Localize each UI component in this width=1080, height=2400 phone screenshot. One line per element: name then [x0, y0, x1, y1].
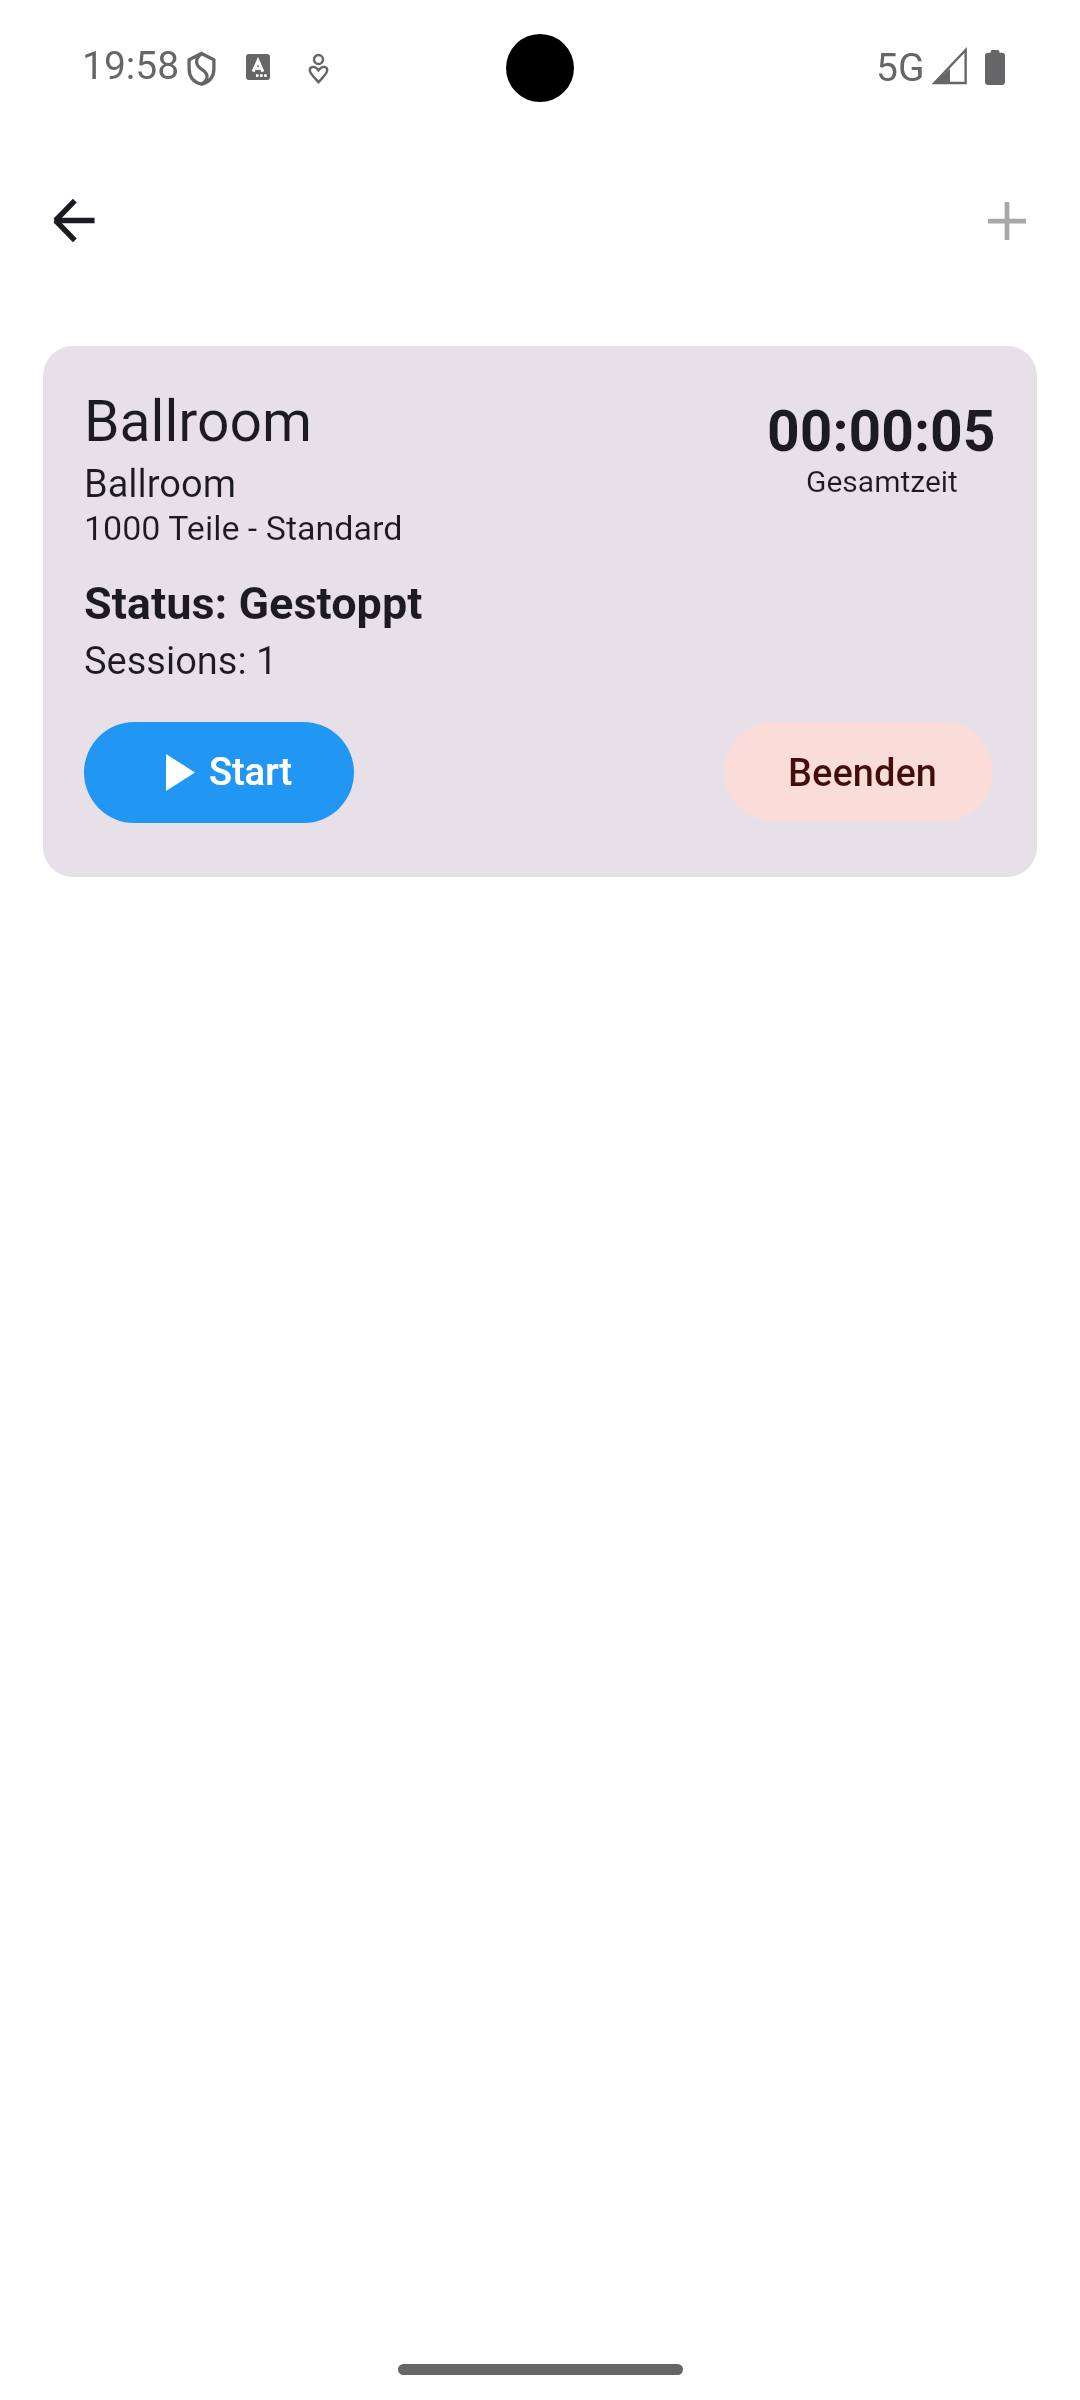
staticText: Start [209, 750, 293, 795]
button[interactable]: Ballroom [43, 346, 1037, 877]
button[interactable]: Add [959, 173, 1055, 269]
staticText: 1000 Teile - Standard [84, 508, 403, 548]
staticText: 5G [876, 45, 925, 91]
staticText: Status: Gestoppt [84, 577, 423, 630]
button[interactable]: Start [84, 722, 354, 823]
staticText: 19:58 [82, 43, 180, 89]
staticText: Ballroom [84, 462, 236, 507]
staticText: Sessions: 1 [84, 639, 278, 684]
staticText: 00:00:05 [767, 398, 996, 465]
staticText: Beenden [788, 751, 937, 796]
button[interactable]: Beenden [724, 722, 993, 821]
staticText: Ballroom [84, 388, 312, 455]
button[interactable]: Back [26, 172, 122, 268]
staticText: Gesamtzeit [806, 464, 958, 499]
